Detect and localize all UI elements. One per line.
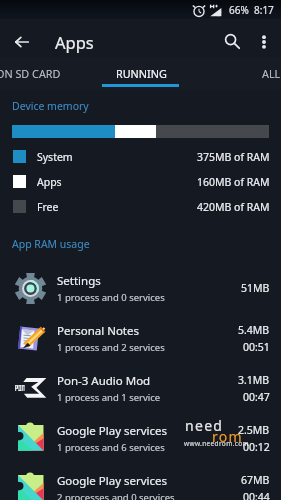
button[interactable]: Pon-3 Audio Mod [0, 363, 281, 413]
staticText: 8:17 [254, 3, 274, 17]
staticText: 67MB [241, 473, 270, 487]
staticText: rom [212, 427, 243, 446]
staticText: 66% [229, 3, 249, 17]
staticText: Settings [57, 273, 101, 289]
staticText: 00:47 [243, 390, 270, 404]
button[interactable]: RUNNING [102, 58, 180, 89]
staticText: Device memory [12, 99, 89, 113]
staticText: 1 process and 1 service [57, 391, 161, 404]
staticText: 51MB [241, 281, 270, 295]
button[interactable]: Personal Notes [0, 313, 281, 363]
button[interactable]: Apps [0, 169, 281, 194]
staticText: Free [37, 200, 59, 214]
button[interactable]: Google Play services [0, 413, 281, 463]
staticText: 160MB of RAM [197, 175, 270, 189]
staticText: 00:12 [243, 440, 270, 454]
staticText: 375MB of RAM [197, 150, 270, 164]
staticText: ON SD CARD [0, 66, 61, 81]
staticText: Google Play services [57, 473, 168, 489]
staticText: www.needrom.com [184, 439, 249, 448]
staticText: ALL [262, 66, 281, 81]
staticText: 5.4MB [238, 323, 270, 337]
staticText: RUNNING [116, 66, 167, 81]
button[interactable]: ALL [221, 58, 281, 89]
staticText: 420MB of RAM [197, 200, 270, 214]
staticText: App RAM usage [12, 237, 90, 251]
staticText: 1 process and 2 services [57, 341, 165, 354]
staticText: 3.1MB [238, 373, 270, 387]
button[interactable]: More options [251, 29, 277, 55]
button[interactable]: Settings [0, 263, 281, 313]
button[interactable]: Back [9, 29, 35, 55]
staticText: 00:51 [243, 340, 270, 354]
staticText: Google Play services [57, 423, 168, 439]
staticText: System [37, 150, 73, 164]
staticText: 2.5MB [238, 423, 270, 437]
staticText: 00:44 [243, 490, 270, 500]
staticText: Personal Notes [57, 323, 140, 339]
button[interactable]: Google Play services [0, 463, 281, 500]
button[interactable]: Search [217, 26, 247, 56]
staticText: Apps [37, 175, 62, 189]
staticText: need [185, 416, 224, 435]
staticText: 1 process and 6 services [57, 441, 165, 454]
staticText: 1 process and 0 services [57, 291, 165, 304]
staticText: 2 processes and 0 services [57, 491, 175, 500]
button[interactable]: Free [0, 194, 281, 219]
button[interactable]: System [0, 144, 281, 169]
button[interactable]: ON SD CARD [0, 58, 78, 89]
staticText: Pon-3 Audio Mod [57, 373, 151, 389]
staticText: Apps [55, 31, 94, 53]
